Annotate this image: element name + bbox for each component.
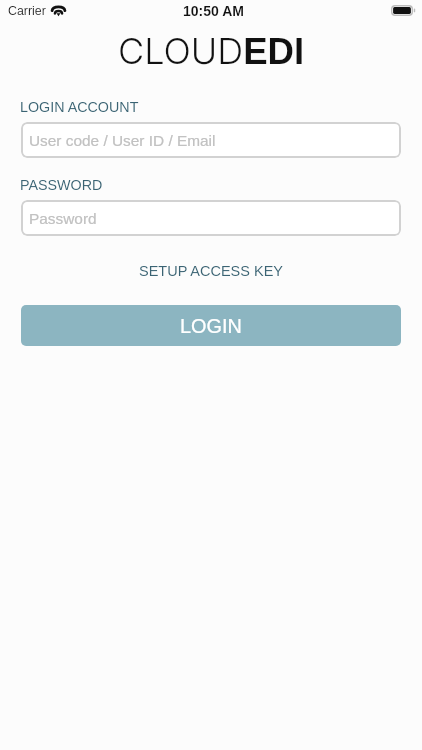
button[interactable]: LOGIN: [21, 305, 401, 346]
staticText: Password: [29, 210, 97, 227]
button[interactable]: User code / User ID / Email: [21, 122, 401, 158]
staticText: PASSWORD: [20, 177, 103, 193]
staticText: 10:50 AM: [183, 3, 244, 19]
staticText: CLOUDEDI: [118, 29, 305, 71]
staticText: User code / User ID / Email: [29, 132, 216, 149]
staticText: LOGIN ACCOUNT: [20, 99, 139, 115]
staticText: Carrier: [8, 4, 46, 18]
other: Wi-Fi signal strength: [51, 5, 66, 16]
other: Battery full: [391, 5, 416, 16]
button[interactable]: Password: [21, 200, 401, 236]
staticText: SETUP ACCESS KEY: [139, 263, 283, 279]
staticText: LOGIN: [180, 315, 242, 337]
button[interactable]: SETUP ACCESS KEY: [131, 260, 291, 282]
